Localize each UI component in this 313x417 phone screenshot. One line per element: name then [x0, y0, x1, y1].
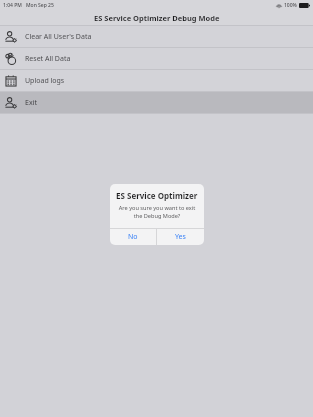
staticText: ES Service Optimizer [116, 190, 198, 201]
staticText: No [128, 232, 138, 242]
staticText: ES Service Optimizer Debug Mode [94, 13, 220, 23]
button[interactable]: Clear All User's Data [0, 26, 313, 47]
button[interactable]: Upload logs [0, 70, 313, 91]
button[interactable]: No [110, 229, 156, 245]
staticText: Yes [175, 232, 186, 242]
staticText: Exit [25, 98, 37, 108]
staticText: Upload logs [25, 76, 65, 86]
staticText: Clear All User's Data [25, 32, 92, 42]
staticText: Are you sure you want to exit the Debug … [115, 204, 199, 219]
staticText: 1:04 PM [3, 2, 22, 9]
button[interactable]: Yes [157, 229, 204, 245]
button[interactable]: Exit [0, 92, 313, 113]
staticText: Mon Sep 25 [26, 2, 54, 9]
staticText: 100% [284, 2, 297, 9]
staticText: Reset All Data [25, 54, 71, 64]
button[interactable]: Reset All Data [0, 48, 313, 69]
